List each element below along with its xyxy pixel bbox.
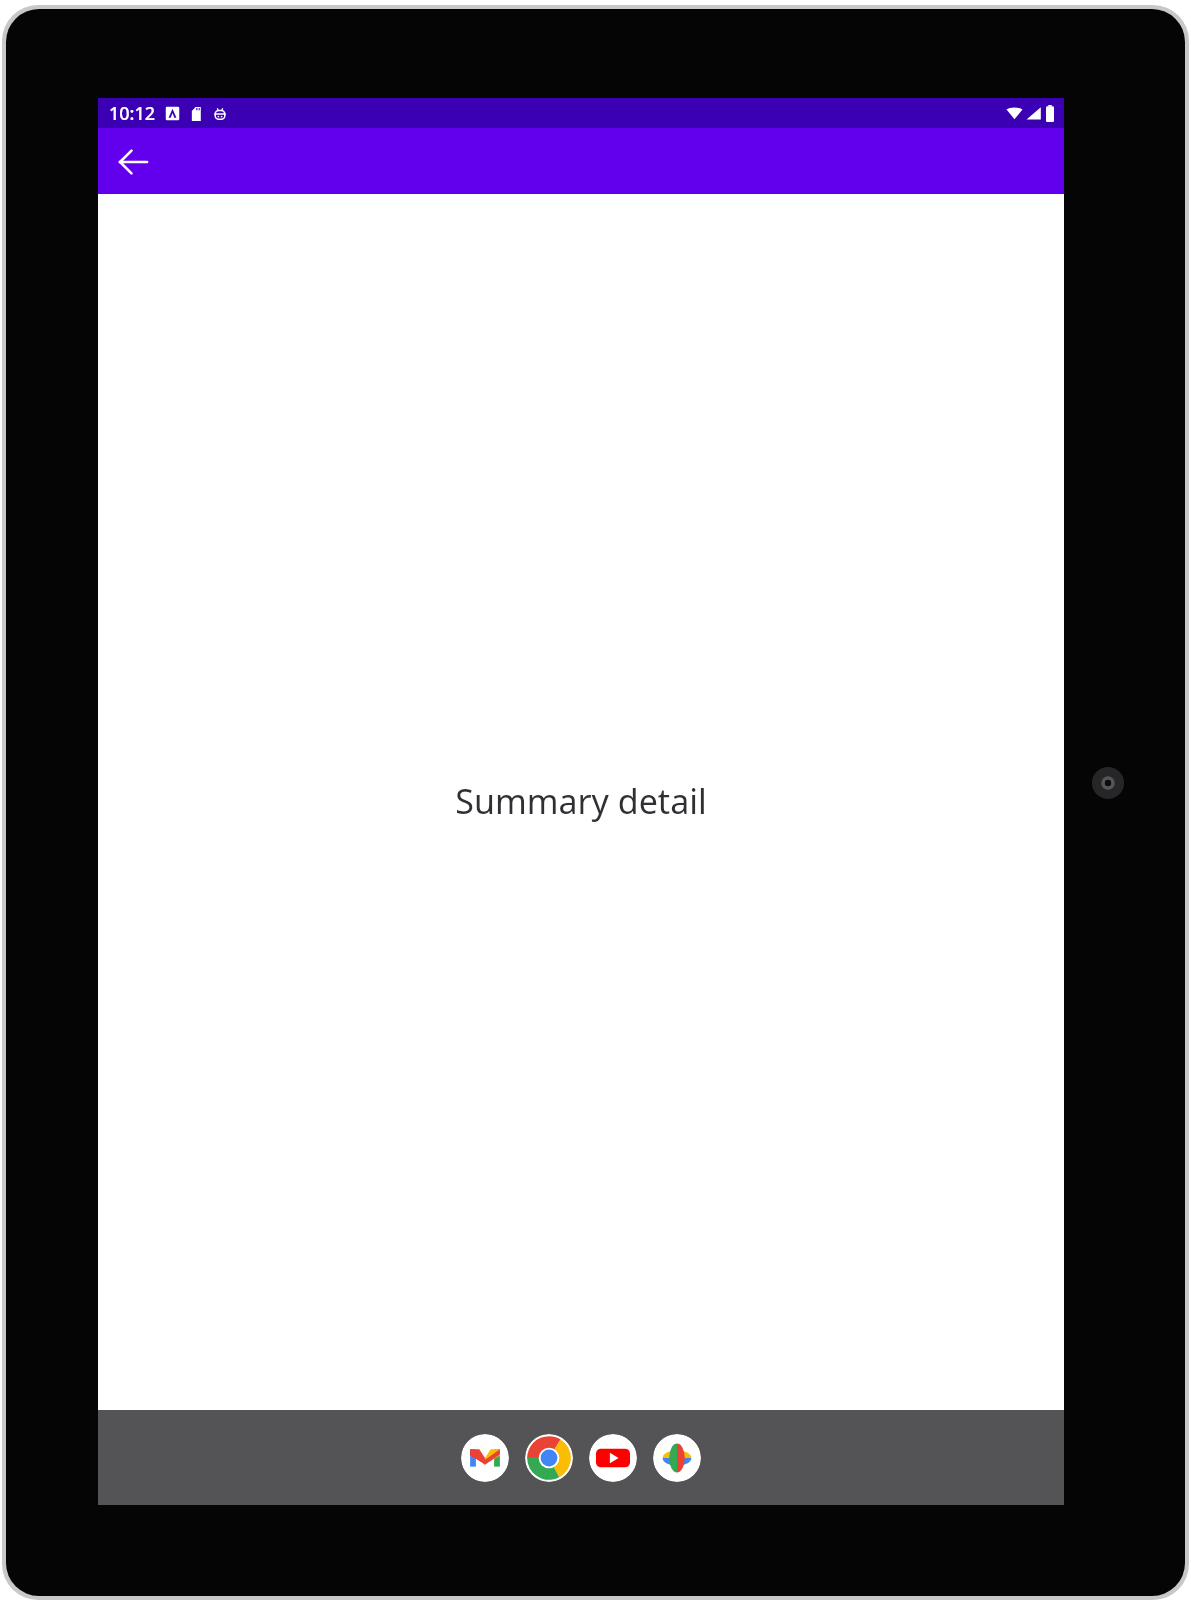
button[interactable]: Google Photos [653,1434,701,1482]
button[interactable]: Gmail [461,1434,509,1482]
button[interactable]: Back [107,136,158,187]
button[interactable]: Chrome [525,1434,573,1482]
staticText: 10:12 [109,101,156,126]
staticText: Summary detail [455,778,707,824]
button[interactable]: YouTube [589,1434,637,1482]
